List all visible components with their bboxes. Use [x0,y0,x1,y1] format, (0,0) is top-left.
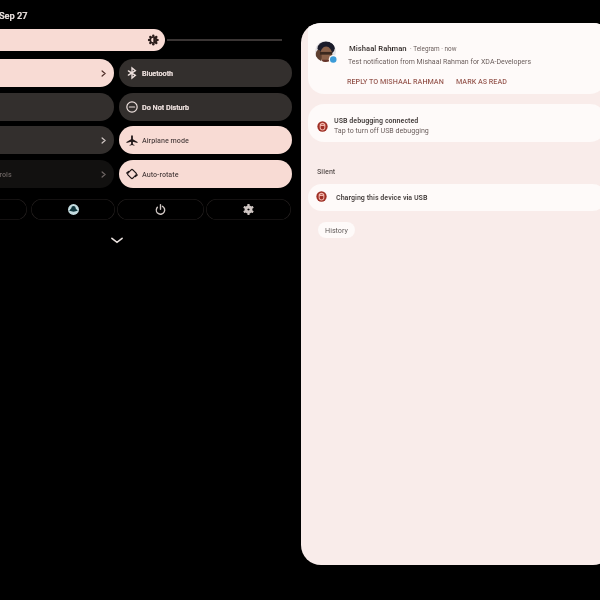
staticText: Auto-rotate [142,170,179,178]
button[interactable]: Airplane mode [119,126,292,154]
staticText: History [325,226,348,234]
button[interactable]: User [31,199,115,220]
staticText: · Telegram · now [410,45,457,53]
button[interactable]: Brightness [0,29,165,51]
button[interactable]: Settings [206,199,291,220]
button[interactable]: MARK AS READ [456,77,507,85]
staticText: USB debugging connected [334,116,419,124]
button[interactable] [0,59,114,87]
button[interactable]: Collapse [106,229,127,250]
button[interactable]: Mishaal Rahman [308,23,600,94]
staticText: Tap to turn off USB debugging [334,126,429,134]
staticText: Mishaal Rahman [349,44,407,53]
button[interactable]: Edit tiles [0,199,27,220]
staticText: Bluetooth [142,69,174,77]
button[interactable]: Charging this device via USB [308,184,600,211]
button[interactable]: Auto-rotate [119,160,292,188]
staticText: Device controls [0,170,12,178]
staticText: REPLY TO MISHAAL RAHMAN [347,77,444,85]
button[interactable]: Device controls [0,160,114,188]
button[interactable]: History [318,222,355,238]
button[interactable]: Bluetooth [119,59,292,87]
staticText: Silent [317,167,336,175]
button[interactable]: USB debugging connected [308,104,600,142]
staticText: Test notification from Mishaal Rahman fo… [348,58,532,66]
staticText: MARK AS READ [456,77,507,85]
button[interactable] [0,93,114,121]
button[interactable]: Do Not Disturb [119,93,292,121]
staticText: Airplane mode [142,136,189,144]
staticText: Charging this device via USB [336,193,428,201]
staticText: Do Not Disturb [142,103,190,111]
button[interactable] [0,126,114,154]
button[interactable]: Power [117,199,204,220]
button[interactable]: REPLY TO MISHAAL RAHMAN [347,77,444,85]
staticText: Sep 27 [0,10,28,21]
